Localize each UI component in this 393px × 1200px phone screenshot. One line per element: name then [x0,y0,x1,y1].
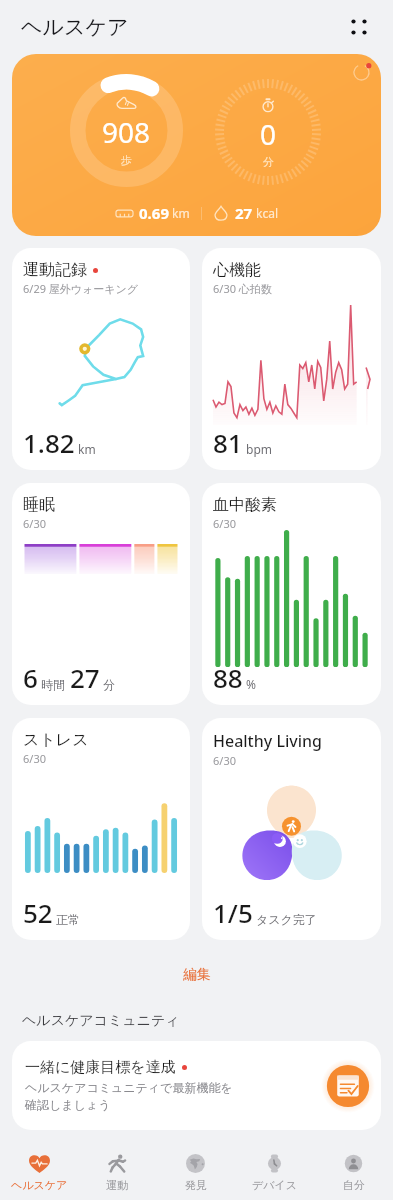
staticText: 81 [213,425,243,460]
button[interactable]: 心機能 [202,248,381,470]
staticText: 運動記録 [23,260,87,280]
staticText: ヘルスケア [11,1178,68,1192]
staticText: 一緒に健康目標を達成 [25,1058,176,1077]
staticText: 1.82 [23,425,75,460]
staticText: 分 [263,155,274,169]
staticText: 血中酸素 [213,495,277,515]
staticText: Healthy Living [213,730,322,752]
staticText: 分 [103,677,115,692]
button[interactable]: Healthy Living [202,718,381,940]
button[interactable]: Open community tasks [326,1064,370,1108]
button[interactable]: ヘルスケア [0,1145,78,1200]
button[interactable]: 編集 [0,966,393,984]
button[interactable]: 発見 [156,1145,235,1200]
staticText: 運動 [106,1178,128,1192]
staticText: 52 [23,895,53,930]
staticText: kcal [256,205,278,221]
staticText: 自分 [343,1178,365,1192]
staticText: 6 [23,660,38,695]
staticText: 6/30 [23,751,46,766]
button[interactable]: 睡眠 [12,483,190,705]
staticText: ヘルスケアコミュニティ [22,1012,180,1030]
staticText: 908 [102,113,151,151]
button[interactable]: ストレス [12,718,190,940]
staticText: 時間 [41,677,65,692]
staticText: 27 [235,203,253,223]
staticText: 6/30 [213,516,236,531]
staticText: 正常 [56,912,80,927]
staticText: km [172,205,190,221]
staticText: 編集 [183,966,211,984]
button[interactable]: 908 [12,54,381,236]
staticText: % [246,676,256,692]
staticText: ヘルスケアコミュニティで最新機能を 確認しましょう [25,1080,233,1112]
button[interactable]: Refresh [353,64,370,81]
button[interactable]: 自分 [314,1145,393,1200]
staticText: 6/30 [23,516,46,531]
staticText: 6/29 屋外ウォーキング [23,281,139,296]
staticText: 1/5 [213,895,253,930]
staticText: タスク完了 [256,912,317,927]
staticText: 27 [70,660,100,695]
staticText: 0.69 [139,203,169,223]
button[interactable]: 運動記録 [12,248,190,470]
button[interactable]: 運動 [78,1145,156,1200]
staticText: ヘルスケア [21,14,129,40]
button[interactable]: More options [337,5,381,49]
staticText: 歩 [121,153,132,167]
staticText: 発見 [185,1178,207,1192]
staticText: bpm [246,441,272,457]
staticText: 0 [260,115,277,153]
staticText: デバイス [252,1178,298,1192]
staticText: 88 [213,660,243,695]
staticText: ストレス [23,730,89,750]
button[interactable]: 一緒に健康目標を達成 [12,1041,381,1130]
staticText: 睡眠 [23,495,55,515]
button[interactable]: 血中酸素 [202,483,381,705]
staticText: 6/30 [213,753,236,768]
staticText: 心機能 [213,260,261,280]
button[interactable]: デバイス [235,1145,314,1200]
staticText: 6/30 心拍数 [213,281,272,296]
staticText: km [78,441,96,457]
